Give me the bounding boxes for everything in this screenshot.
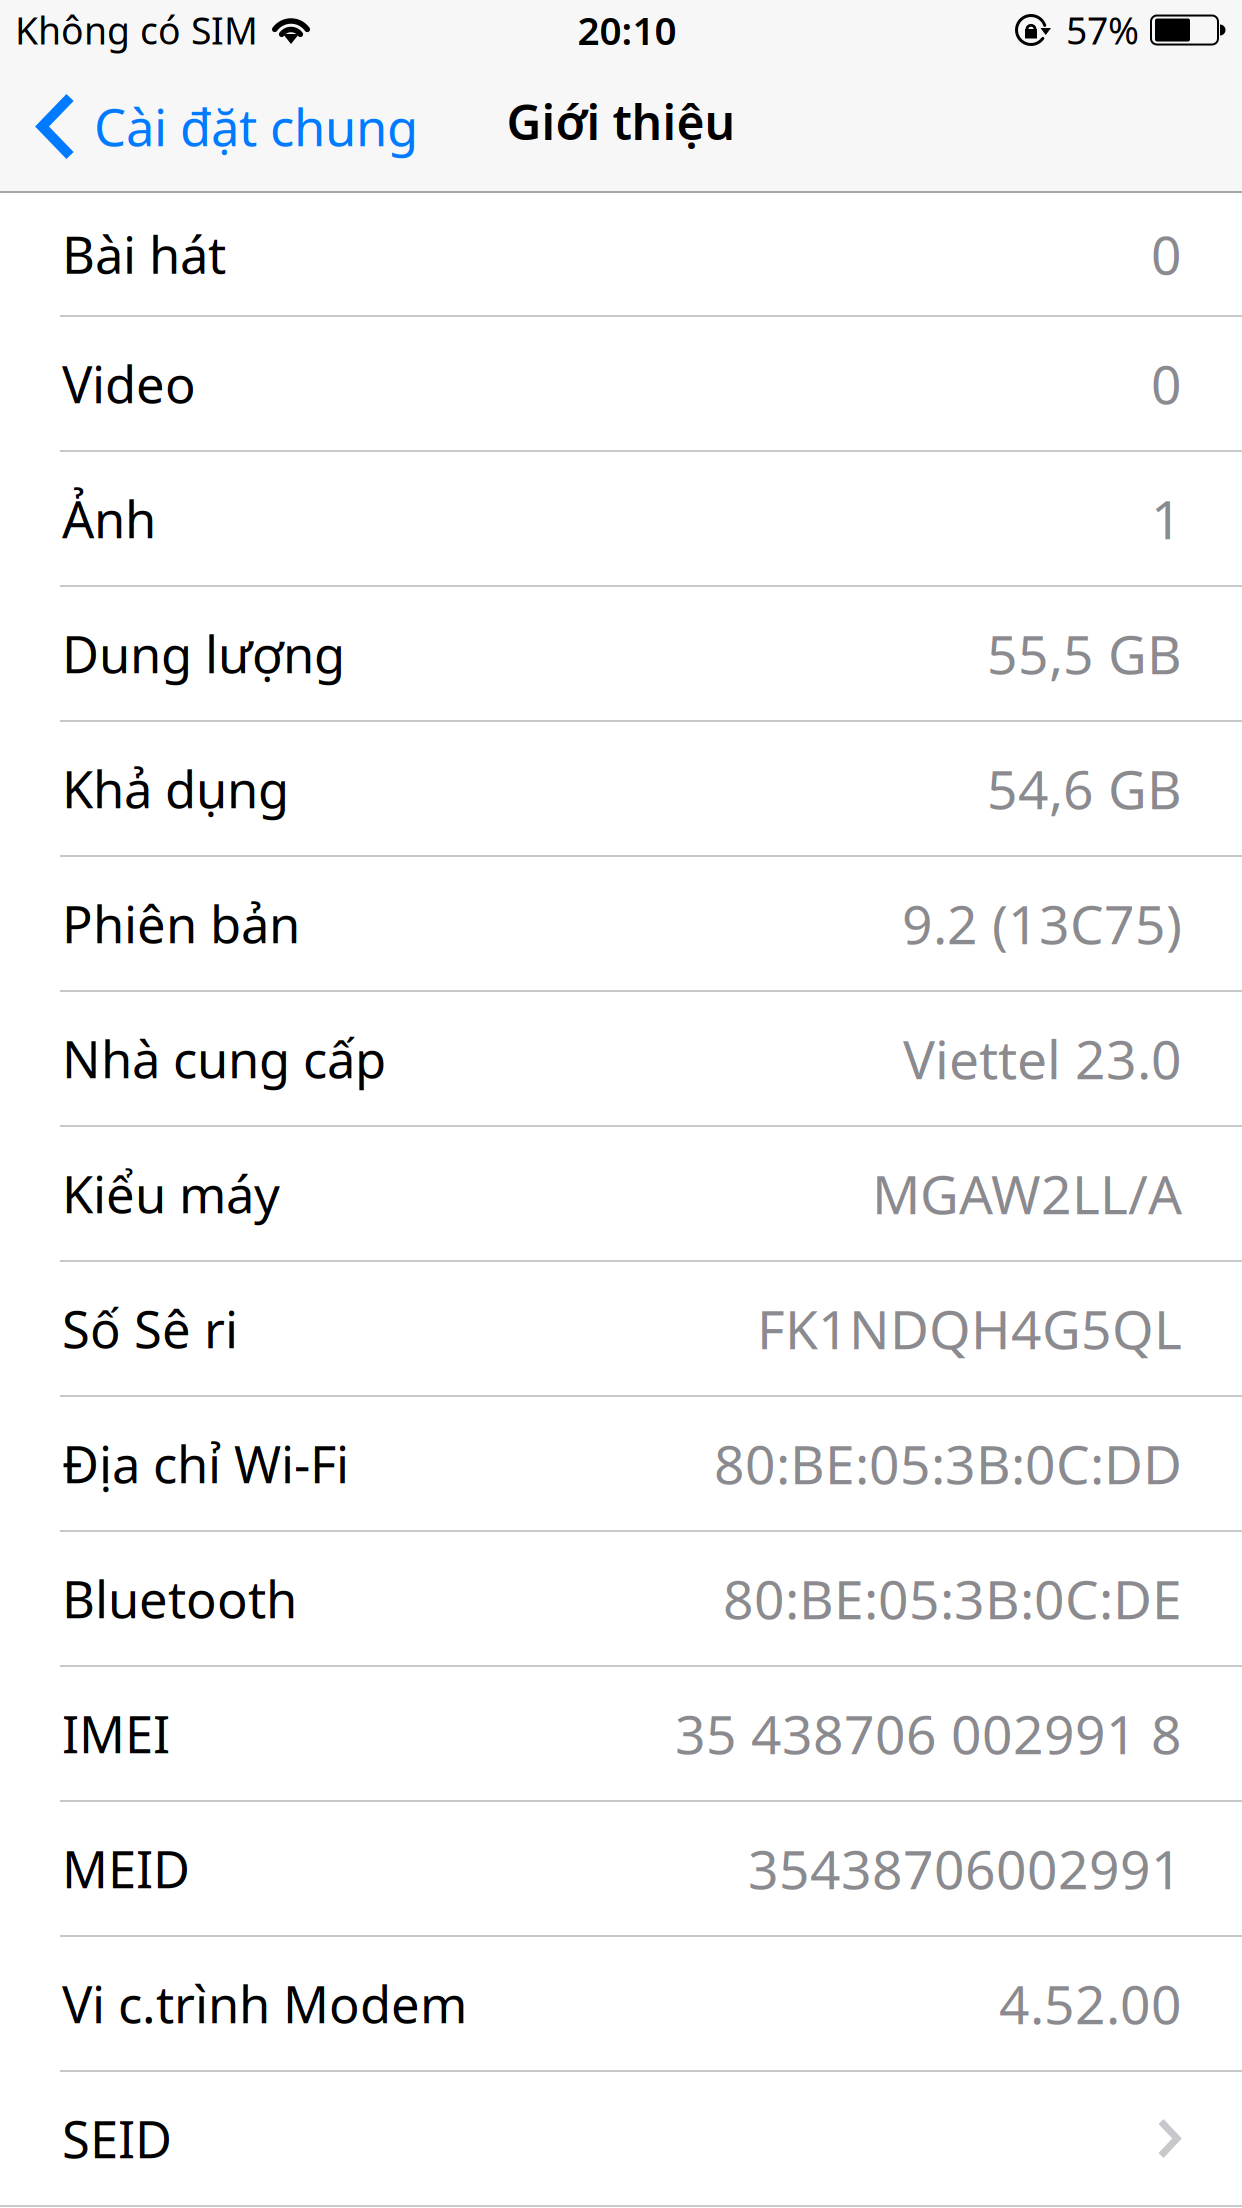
button[interactable]: IMEI: [0, 1667, 1242, 1802]
staticText: SEID: [62, 2105, 172, 2172]
staticText: Không có SIM: [15, 5, 258, 55]
button[interactable]: Kiểu máy: [0, 1127, 1242, 1262]
staticText: 9.2 (13C75): [902, 888, 1182, 959]
staticText: Địa chỉ Wi-Fi: [62, 1430, 349, 1497]
staticText: FK1NDQH4G5QL: [757, 1293, 1182, 1364]
staticText: Viettel 23.0: [903, 1023, 1182, 1094]
button[interactable]: MEID: [0, 1802, 1242, 1937]
button[interactable]: SEID: [0, 2072, 1242, 2207]
button[interactable]: Cài đặt chung: [0, 60, 436, 193]
staticText: Nhà cung cấp: [62, 1025, 386, 1092]
staticText: Số Sê ri: [62, 1295, 238, 1362]
staticText: Giới thiệu: [506, 90, 735, 153]
button[interactable]: Ảnh: [0, 452, 1242, 587]
staticText: Bài hát: [62, 220, 226, 288]
button[interactable]: Bluetooth: [0, 1532, 1242, 1667]
button[interactable]: Dung lượng: [0, 587, 1242, 722]
staticText: Video: [62, 350, 196, 417]
button[interactable]: Bài hát: [0, 193, 1242, 317]
staticText: 80:BE:05:3B:0C:DD: [714, 1428, 1182, 1499]
button[interactable]: Địa chỉ Wi-Fi: [0, 1397, 1242, 1532]
staticText: Vi c.trình Modem: [62, 1970, 467, 2037]
staticText: 54,6 GB: [987, 753, 1182, 824]
staticText: Bluetooth: [62, 1565, 297, 1632]
staticText: 0: [1151, 219, 1182, 289]
button[interactable]: Khả dụng: [0, 722, 1242, 857]
button[interactable]: Video: [0, 317, 1242, 452]
staticText: 57%: [1066, 5, 1139, 55]
staticText: Ảnh: [62, 485, 156, 552]
staticText: 20:10: [577, 4, 676, 56]
staticText: 0: [1151, 348, 1182, 419]
staticText: MEID: [62, 1835, 190, 1902]
button[interactable]: Phiên bản: [0, 857, 1242, 992]
staticText: IMEI: [62, 1700, 170, 1767]
staticText: 35438706002991: [748, 1833, 1182, 1904]
staticText: Dung lượng: [62, 620, 345, 687]
staticText: Phiên bản: [62, 890, 300, 957]
staticText: 35 438706 002991 8: [675, 1698, 1182, 1769]
staticText: 55,5 GB: [987, 618, 1182, 689]
button[interactable]: Vi c.trình Modem: [0, 1937, 1242, 2072]
button[interactable]: Nhà cung cấp: [0, 992, 1242, 1127]
staticText: Cài đặt chung: [94, 93, 418, 160]
staticText: 80:BE:05:3B:0C:DE: [723, 1563, 1182, 1634]
staticText: 4.52.00: [999, 1968, 1182, 2039]
staticText: 1: [1151, 483, 1182, 554]
button[interactable]: Số Sê ri: [0, 1262, 1242, 1397]
staticText: MGAW2LL/A: [872, 1158, 1182, 1229]
staticText: Kiểu máy: [62, 1160, 280, 1227]
staticText: Khả dụng: [62, 755, 289, 822]
